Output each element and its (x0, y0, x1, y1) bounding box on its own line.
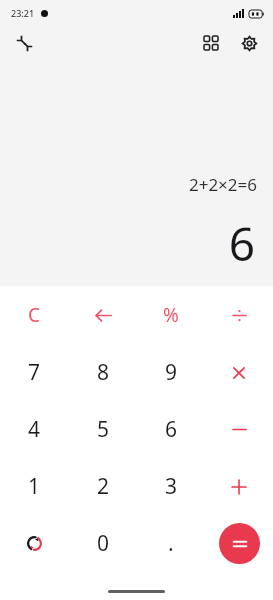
button[interactable]: 6 (137, 401, 205, 458)
staticText: 23:21 (11, 7, 35, 19)
button[interactable]: 1 (0, 458, 69, 515)
staticText: 3 (165, 472, 178, 501)
staticText: % (163, 302, 179, 328)
button[interactable]: 9 (137, 344, 205, 401)
button[interactable]: 0 (69, 515, 137, 572)
button[interactable]: Divide (205, 286, 273, 344)
button[interactable]: 4 (0, 401, 69, 458)
staticText: 6 (165, 415, 178, 444)
button[interactable]: 3 (137, 458, 205, 515)
staticText: 2 (97, 472, 110, 501)
staticText: 1 (28, 472, 41, 501)
button[interactable]: 7 (0, 344, 69, 401)
button[interactable]: Multiply (205, 344, 273, 401)
button[interactable]: Collapse (8, 27, 40, 59)
staticText: C (28, 302, 41, 328)
button[interactable]: 2 (69, 458, 137, 515)
staticText: 0 (97, 529, 110, 558)
button[interactable]: C (0, 286, 69, 344)
staticText: 8 (97, 358, 110, 387)
staticText: . (168, 529, 174, 558)
staticText: 5 (97, 415, 110, 444)
staticText: 4 (28, 415, 41, 444)
button[interactable]: . (137, 515, 205, 572)
button[interactable]: History (0, 515, 69, 572)
button[interactable]: 8 (69, 344, 137, 401)
staticText: 2+2×2=6 (0, 173, 257, 196)
button[interactable]: Backspace (69, 286, 137, 344)
staticText: 9 (165, 358, 178, 387)
button[interactable]: 5 (69, 401, 137, 458)
button[interactable]: Plus (205, 458, 273, 515)
button[interactable]: % (137, 286, 205, 344)
staticText: 7 (28, 358, 41, 387)
button[interactable]: Settings (233, 27, 265, 59)
button[interactable]: Minus (205, 401, 273, 458)
button[interactable]: Scientific keypad (195, 27, 227, 59)
staticText: 6 (0, 212, 255, 275)
button[interactable]: Equals (219, 523, 260, 564)
